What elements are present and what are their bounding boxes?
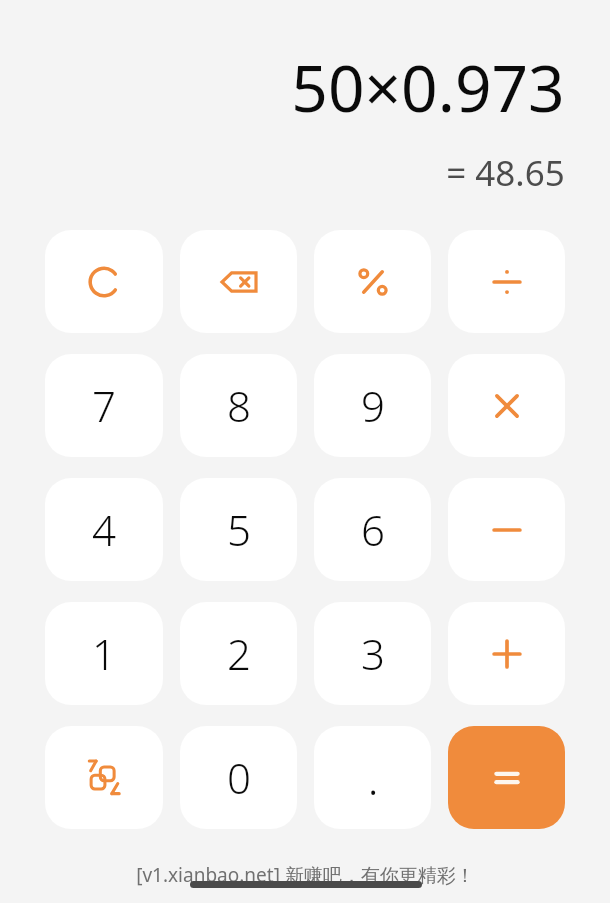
button[interactable]: 0 [180, 726, 297, 829]
button[interactable]: . [314, 726, 431, 829]
staticText: 8 [227, 377, 251, 434]
button[interactable]: 9 [314, 354, 431, 457]
staticText: [v1.xianbao.net] 新赚吧，有你更精彩！ [136, 862, 475, 888]
staticText: 5 [227, 501, 251, 558]
button[interactable]: Divide [448, 230, 565, 333]
button[interactable]: Multiply [448, 354, 565, 457]
button[interactable]: Backspace [180, 230, 297, 333]
staticText: 0 [227, 749, 251, 806]
button[interactable]: 8 [180, 354, 297, 457]
staticText: 50×0.973 [291, 44, 565, 131]
button[interactable]: 2 [180, 602, 297, 705]
button[interactable]: 4 [45, 478, 163, 581]
staticText: 6 [361, 501, 385, 558]
staticText: = 48.65 [446, 149, 565, 197]
button[interactable]: 6 [314, 478, 431, 581]
button[interactable]: Clear [45, 230, 163, 333]
button[interactable]: Unit converter [45, 726, 163, 829]
button[interactable]: 3 [314, 602, 431, 705]
staticText: 1 [92, 625, 116, 682]
staticText: . [367, 746, 379, 809]
staticText: 3 [361, 625, 385, 682]
button[interactable]: Minus [448, 478, 565, 581]
staticText: 2 [227, 625, 251, 682]
staticText: 7 [92, 377, 116, 434]
staticText: 4 [92, 501, 116, 558]
button[interactable]: Plus [448, 602, 565, 705]
button[interactable]: Percent [314, 230, 431, 333]
button[interactable]: 5 [180, 478, 297, 581]
button[interactable]: Equals [448, 726, 565, 829]
button[interactable]: 1 [45, 602, 163, 705]
button[interactable]: 7 [45, 354, 163, 457]
staticText: 9 [361, 377, 385, 434]
